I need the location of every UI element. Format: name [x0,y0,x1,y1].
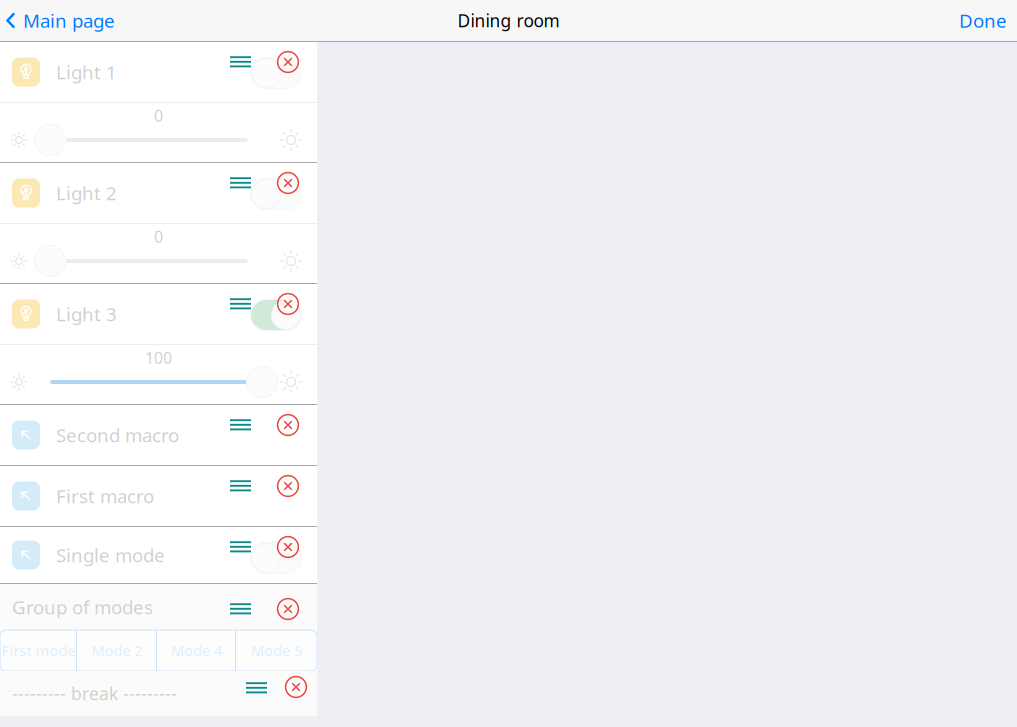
button[interactable]: Light 2 off [250,178,301,209]
button[interactable]: Reorder [225,532,255,562]
staticText: Dining room [457,9,559,32]
staticText: Main page [23,8,115,33]
staticText: Second macro [56,423,179,447]
button[interactable]: Delete [283,674,309,700]
button[interactable]: First macro [0,466,317,526]
staticText: Light 3 [56,302,117,326]
button[interactable]: Done [959,0,1017,41]
button[interactable]: Single mode off [250,542,301,573]
button[interactable]: Reorder [241,673,271,703]
button[interactable]: Light 3 [0,284,317,344]
button[interactable]: Reorder [225,471,255,501]
staticText: Mode 2 [91,641,142,660]
button[interactable]: Delete [275,534,301,560]
staticText: 0 [154,105,163,126]
staticText: Group of modes [12,595,153,619]
button[interactable]: Mode 4 [157,630,236,671]
staticText: Mode 4 [171,641,222,660]
button[interactable]: Delete [275,412,301,438]
button[interactable]: Mode 5 [236,630,317,671]
button[interactable]: Main page [0,0,115,41]
button[interactable]: Second macro [0,405,317,465]
staticText: First macro [56,484,154,508]
button[interactable]: Light 3 on [250,299,301,330]
button[interactable]: First mode [0,630,77,671]
button[interactable]: Reorder [225,289,255,319]
staticText: 0 [154,226,163,247]
button[interactable]: Delete [275,291,301,317]
button[interactable]: Delete [275,49,301,75]
staticText: --------- break --------- [12,682,177,705]
button[interactable]: Reorder [225,410,255,440]
button[interactable]: Delete [275,170,301,196]
staticText: Light 2 [56,181,117,205]
button[interactable]: Delete [275,596,301,622]
staticText: 100 [145,347,172,368]
button[interactable]: Mode 2 [77,630,157,671]
button[interactable]: Light 1 off [250,57,301,88]
button[interactable]: Delete [275,473,301,499]
button[interactable]: Group of modes [0,584,317,630]
staticText: Done [959,8,1007,33]
staticText: Light 1 [56,60,117,84]
button[interactable]: Reorder [225,47,255,77]
button[interactable]: Reorder [225,594,255,624]
button[interactable]: Single mode [0,527,317,583]
staticText: Single mode [56,543,165,567]
button[interactable]: Light 1 [0,42,317,102]
button[interactable]: Reorder [225,168,255,198]
staticText: Mode 5 [251,641,302,660]
button[interactable]: Light 2 [0,163,317,223]
button[interactable]: --------- break --------- [0,671,317,716]
staticText: First mode [1,641,75,660]
